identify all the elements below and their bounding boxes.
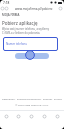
staticText: Regulamin · Polityka prywatności · Konta… [0,97,64,100]
button[interactable]: More options [58,6,63,11]
staticText: Numer telefonu [6,42,27,46]
staticText: Pobierz aplikację [2,20,38,26]
staticText: Wpisz swój numer telefonu, a wyślemy Ci … [2,27,50,35]
button[interactable]: Reload page [4,6,9,11]
staticText: © 2024 Moja Firma Sp. z o.o. [0,103,64,106]
button[interactable]: Forward [25,111,38,129]
button[interactable] [15,53,49,59]
button[interactable]: Numer telefonu [3,37,58,51]
button[interactable]: Tabs [38,111,51,129]
staticText: 7:18 [3,1,10,5]
button[interactable]: Back [12,111,25,129]
staticText: www.mojafirma.pl/pobierz [15,7,53,11]
staticText: MOJA FIRMA [2,13,20,17]
button[interactable]: Menu [51,111,64,129]
button[interactable]: Site information [0,6,5,11]
button[interactable]: Home [0,111,12,129]
